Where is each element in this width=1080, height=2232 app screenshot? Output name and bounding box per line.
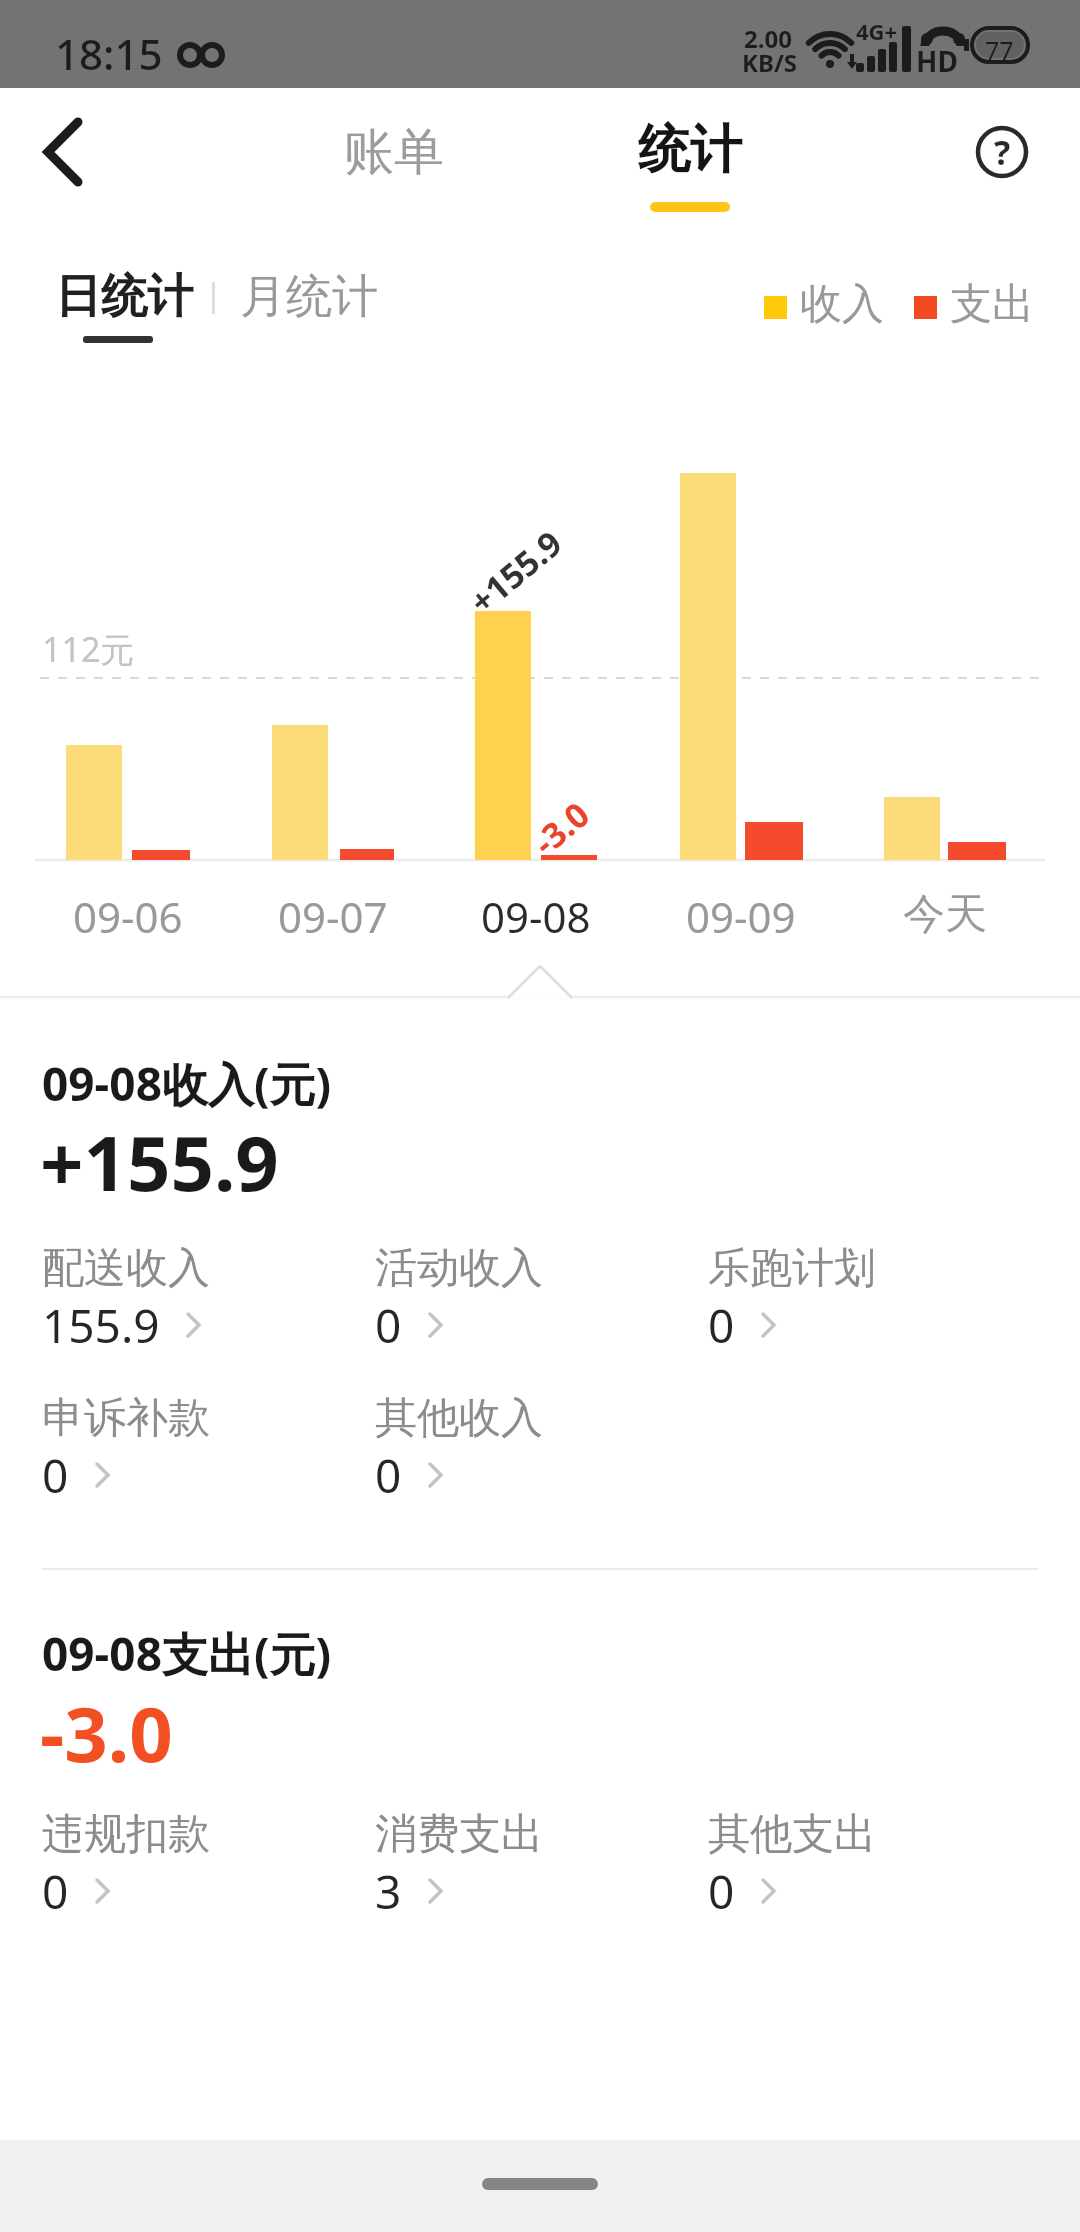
staticText: KB/S [742, 46, 798, 79]
staticText: 月统计 [240, 268, 378, 326]
staticText: 09-08收入(元) [42, 1052, 332, 1115]
button[interactable]: 配送收入 [42, 1242, 342, 1352]
staticText: 0 [42, 1444, 69, 1507]
staticText: 其他收入 [375, 1392, 543, 1445]
staticText: 4G+ [856, 16, 898, 46]
staticText: 18:15 [55, 25, 163, 82]
button[interactable]: ? [972, 122, 1032, 182]
staticText: 乐跑计划 [708, 1242, 876, 1295]
staticText: 申诉补款 [42, 1392, 210, 1445]
button[interactable]: 乐跑计划 [708, 1242, 1008, 1352]
staticText: 其他支出 [708, 1808, 876, 1861]
staticText: -3.0 [523, 791, 599, 865]
button[interactable] [40, 118, 88, 186]
staticText: 09-07 [278, 888, 388, 945]
staticText: 支出 [950, 278, 1034, 331]
staticText: 0 [375, 1294, 402, 1357]
button[interactable]: 违规扣款 [42, 1808, 342, 1918]
button[interactable]: 日统计 [55, 268, 195, 348]
button[interactable]: 活动收入 [375, 1242, 675, 1352]
staticText: 09-09 [686, 888, 796, 945]
staticText: 账单 [344, 121, 444, 184]
button[interactable]: 消费支出 [375, 1808, 675, 1918]
staticText: 消费支出 [375, 1808, 543, 1861]
staticText: 0 [42, 1860, 69, 1923]
staticText: 统计 [638, 117, 742, 183]
staticText: 日统计 [55, 268, 193, 326]
button[interactable]: 统计 [590, 114, 790, 186]
staticText: 0 [708, 1860, 735, 1923]
staticText: 活动收入 [375, 1242, 543, 1295]
staticText: 77 [985, 33, 1014, 67]
staticText: +155.9 [40, 1110, 279, 1214]
button[interactable]: 账单 [294, 116, 494, 188]
button[interactable]: 其他收入 [375, 1392, 675, 1502]
staticText: 0 [375, 1444, 402, 1507]
staticText: 0 [708, 1294, 735, 1357]
staticText: 112元 [42, 626, 135, 672]
staticText: ? [994, 129, 1011, 175]
staticText: -3.0 [40, 1681, 173, 1785]
staticText: 收入 [800, 278, 884, 331]
staticText: 今天 [903, 888, 987, 941]
staticText: 违规扣款 [42, 1808, 210, 1861]
staticText: 155.9 [42, 1294, 160, 1357]
staticText: 09-08 [481, 888, 591, 945]
button[interactable]: 申诉补款 [42, 1392, 342, 1502]
staticText: 配送收入 [42, 1242, 210, 1295]
staticText: 2.00 [744, 22, 792, 55]
staticText: +155.9 [460, 520, 571, 624]
button[interactable]: 其他支出 [708, 1808, 1008, 1918]
staticText: 3 [375, 1860, 402, 1923]
button[interactable]: 月统计 [240, 268, 380, 348]
staticText: HD [916, 42, 958, 80]
staticText: 09-06 [73, 888, 183, 945]
staticText: 09-08支出(元) [42, 1622, 332, 1685]
